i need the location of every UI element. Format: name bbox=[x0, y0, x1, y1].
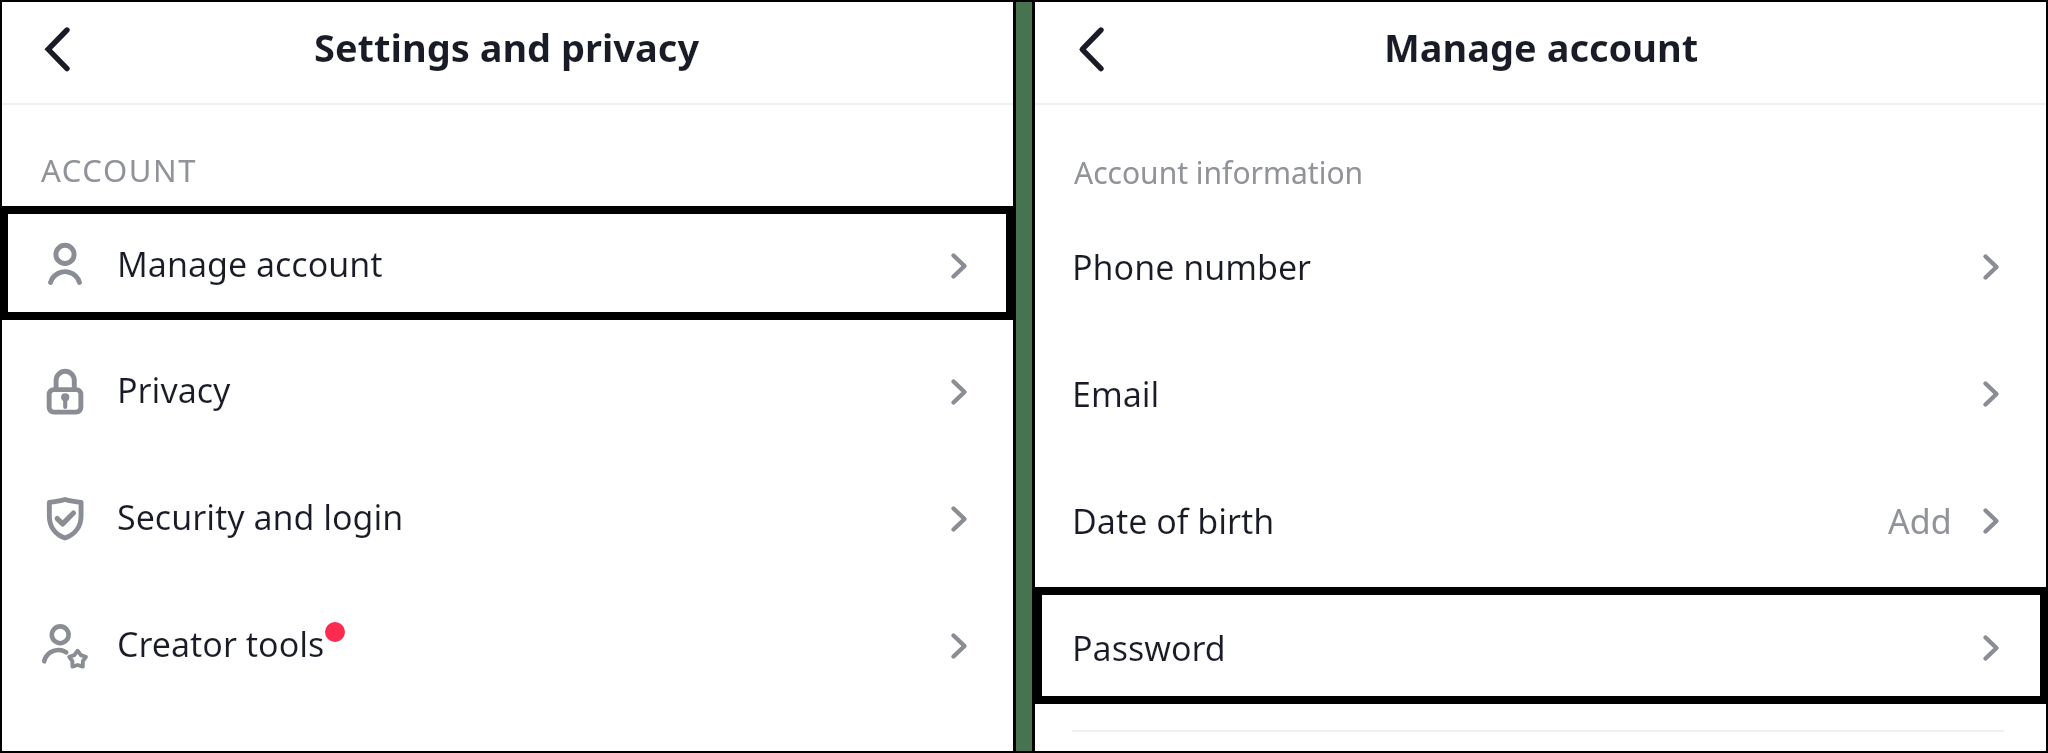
staticText: Account information bbox=[1074, 152, 1364, 193]
button[interactable]: Back bbox=[20, 10, 84, 92]
button[interactable]: Security and login bbox=[0, 453, 1014, 579]
button[interactable]: Email bbox=[1034, 328, 2048, 455]
staticText: Privacy bbox=[117, 367, 231, 413]
button[interactable]: Back bbox=[1054, 10, 1118, 92]
staticText: Manage account bbox=[1384, 21, 1699, 73]
staticText: Creator tools bbox=[117, 621, 325, 667]
staticText: Manage account bbox=[117, 241, 383, 287]
button[interactable]: Date of birth bbox=[1034, 455, 2048, 582]
button[interactable]: Privacy bbox=[0, 326, 1014, 452]
staticText: Password bbox=[1072, 625, 1226, 671]
staticText: Phone number bbox=[1072, 244, 1312, 290]
button[interactable]: Manage account bbox=[0, 200, 1014, 326]
staticText: Settings and privacy bbox=[314, 21, 700, 73]
staticText: Date of birth bbox=[1072, 498, 1275, 544]
staticText: Security and login bbox=[117, 494, 404, 540]
staticText: Email bbox=[1072, 371, 1160, 417]
staticText: Add bbox=[1888, 498, 1952, 544]
button[interactable]: Phone number bbox=[1034, 201, 2048, 328]
button[interactable]: Password bbox=[1034, 582, 2048, 709]
staticText: ACCOUNT bbox=[41, 149, 198, 191]
button[interactable]: Creator tools bbox=[0, 580, 1014, 706]
